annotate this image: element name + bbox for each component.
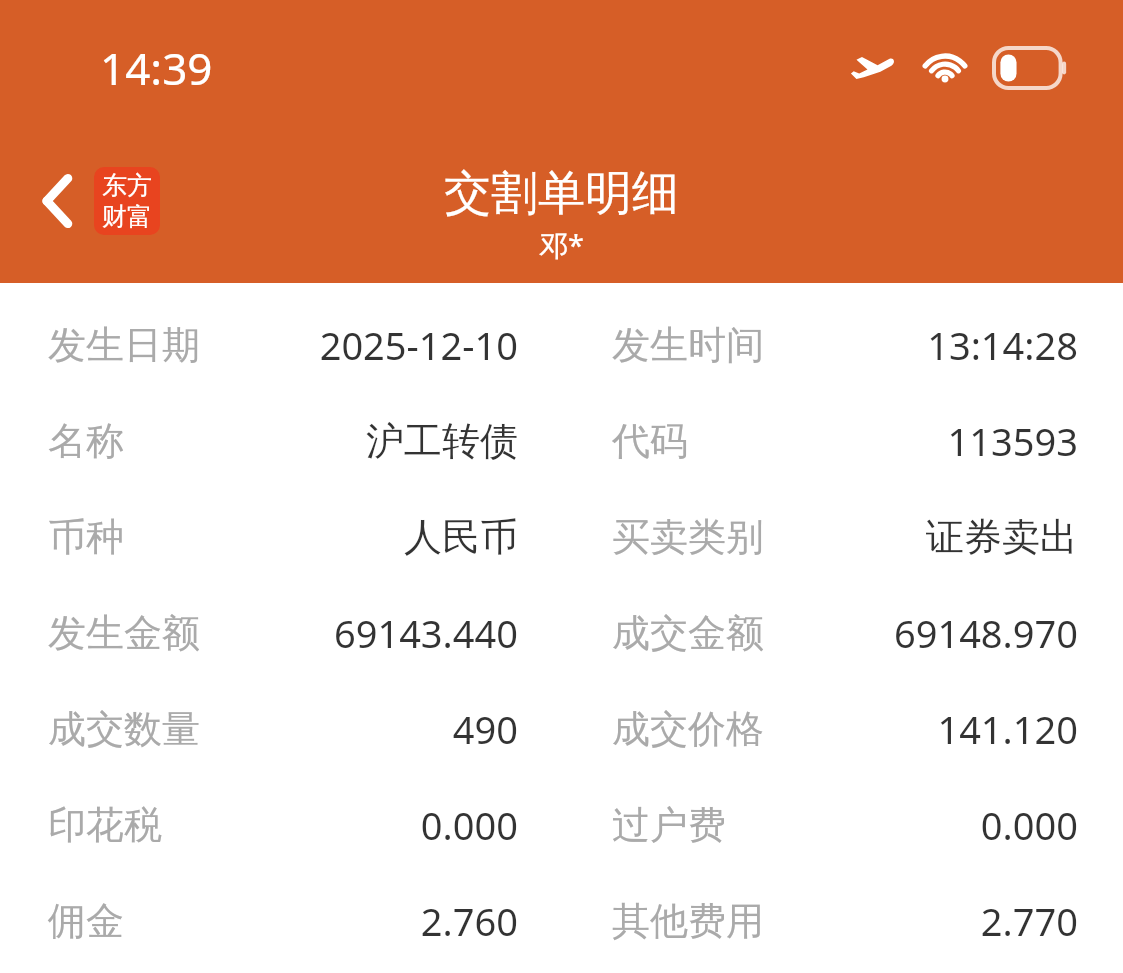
button[interactable]: 发生日期 xyxy=(0,297,1123,393)
staticText: 69148.970 xyxy=(893,607,1078,659)
staticText: 证券卖出 xyxy=(926,513,1078,561)
button[interactable]: 发生金额 xyxy=(0,585,1123,681)
staticText: 成交金额 xyxy=(612,609,764,657)
staticText: 14:39 xyxy=(100,38,213,98)
staticText: 印花税 xyxy=(48,801,162,849)
staticText: 69143.440 xyxy=(333,607,518,659)
staticText: 代码 xyxy=(612,417,688,465)
staticText: 490 xyxy=(452,703,518,755)
staticText: 2.760 xyxy=(420,895,518,947)
staticText: 币种 xyxy=(48,513,124,561)
staticText: 沪工转债 xyxy=(366,417,518,465)
button[interactable]: 印花税 xyxy=(0,777,1123,873)
button[interactable]: 币种 xyxy=(0,489,1123,585)
staticText: 0.000 xyxy=(980,799,1078,851)
staticText: 过户费 xyxy=(612,801,726,849)
staticText: 0.000 xyxy=(420,799,518,851)
staticText: 成交价格 xyxy=(612,705,764,753)
staticText: 东方 xyxy=(102,170,152,201)
button[interactable]: 名称 xyxy=(0,393,1123,489)
staticText: 佣金 xyxy=(48,897,124,945)
staticText: 人民币 xyxy=(404,513,518,561)
staticText: 邓* xyxy=(539,225,584,265)
button[interactable]: 佣金 xyxy=(0,873,1123,969)
staticText: 买卖类别 xyxy=(612,513,764,561)
staticText: 2025-12-10 xyxy=(319,319,518,371)
staticText: 成交数量 xyxy=(48,705,200,753)
staticText: 发生时间 xyxy=(612,321,764,369)
staticText: 发生金额 xyxy=(48,609,200,657)
staticText: 141.120 xyxy=(937,703,1078,755)
staticText: 113593 xyxy=(947,415,1078,467)
staticText: 交割单明细 xyxy=(444,164,679,223)
staticText: 财富 xyxy=(102,201,152,232)
staticText: 其他费用 xyxy=(612,897,764,945)
button[interactable]: 成交数量 xyxy=(0,681,1123,777)
button[interactable]: Back xyxy=(34,161,166,241)
staticText: 13:14:28 xyxy=(927,319,1078,371)
staticText: 发生日期 xyxy=(48,321,200,369)
staticText: 名称 xyxy=(48,417,124,465)
staticText: 2.770 xyxy=(980,895,1078,947)
